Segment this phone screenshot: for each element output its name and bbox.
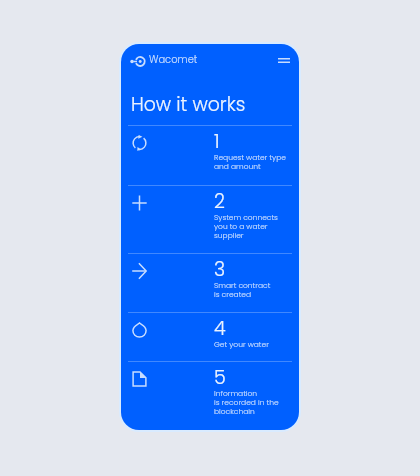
staticText: 4 [214,315,226,342]
button[interactable]: 4 [121,312,299,361]
button[interactable]: 2 [121,185,299,253]
button[interactable]: 5 [121,361,299,430]
staticText: Wacomet [149,53,198,67]
button[interactable]: 3 [121,253,299,312]
staticText: Get your water [214,339,269,349]
staticText: Information [214,388,258,398]
staticText: is recorded in the [214,397,279,407]
staticText: System connects [214,212,278,222]
staticText: How it works [131,91,246,117]
button[interactable]: Open menu [275,52,293,70]
staticText: is created [214,289,252,299]
staticText: you to a water [214,221,268,231]
staticText: Smart contract [214,280,271,290]
staticText: 1 [214,128,220,155]
staticText: Request water type [214,152,286,162]
staticText: and amount [214,161,261,171]
button[interactable]: 1 [121,125,299,185]
staticText: 2 [214,188,225,215]
button[interactable]: Wacomet [130,54,198,68]
staticText: 5 [214,364,226,391]
staticText: blockchain [214,406,255,416]
staticText: supplier [214,230,244,240]
staticText: 3 [214,256,226,283]
